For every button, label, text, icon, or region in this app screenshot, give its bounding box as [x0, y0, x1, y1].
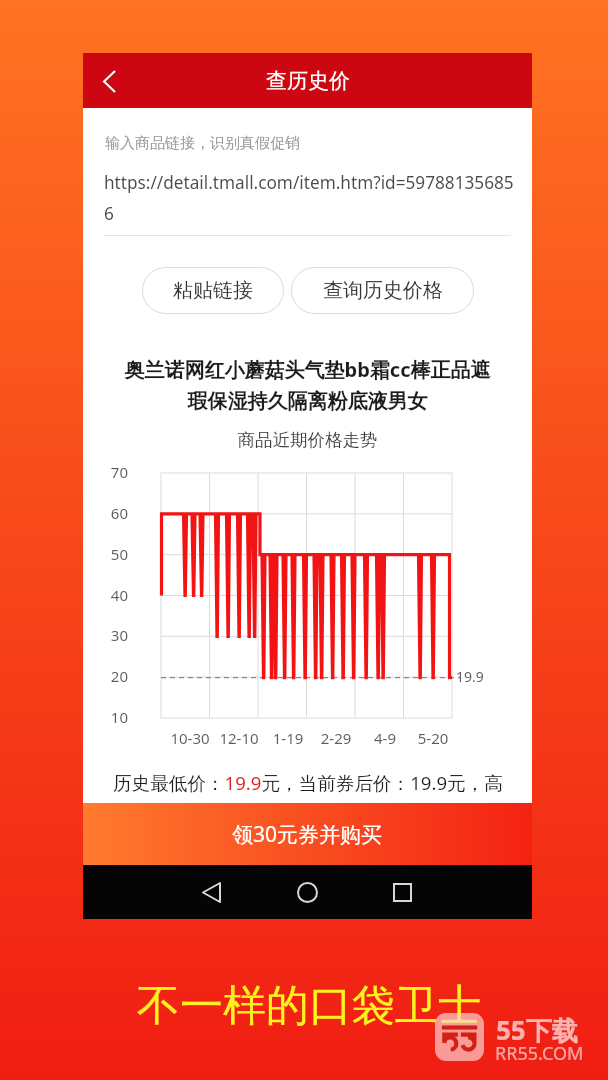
button[interactable]: Back	[189, 870, 233, 914]
staticText: 40	[104, 585, 128, 605]
staticText: 5-20	[405, 728, 461, 748]
staticText: 奥兰诺网红小蘑菇头气垫bb霜cc棒正品遮 瑕保湿持久隔离粉底液男女	[91, 356, 524, 414]
staticText: 2-29	[308, 728, 364, 748]
staticText: 输入商品链接，识别真假促销	[105, 134, 300, 153]
button[interactable]: Back	[83, 55, 135, 107]
staticText: 10-30	[162, 728, 218, 748]
staticText: 查历史价	[266, 68, 350, 94]
staticText: 4-9	[357, 728, 413, 748]
staticText: 70	[104, 462, 128, 482]
button[interactable]: 领30元券并购买	[83, 803, 532, 865]
button[interactable]: 粘贴链接	[143, 268, 283, 313]
staticText: 不一样的口袋卫士	[137, 979, 481, 1033]
staticText: 1-19	[260, 728, 316, 748]
button[interactable]: 查询历史价格	[292, 268, 473, 313]
staticText: 30	[104, 625, 128, 645]
staticText: 查询历史价格	[323, 278, 443, 303]
staticText: 60	[104, 503, 128, 523]
staticText: 19.9	[456, 667, 484, 686]
staticText: 粘贴链接	[173, 278, 253, 303]
staticText: 历史最低价：19.9元，当前券后价：19.9元，高	[113, 770, 503, 795]
staticText: 12-10	[211, 728, 267, 748]
button[interactable]: Home	[285, 870, 329, 914]
staticText: RR55.COM	[495, 1041, 584, 1066]
staticText: https://detail.tmall.com/item.htm?id=597…	[104, 171, 530, 225]
staticText: 20	[104, 666, 128, 686]
staticText: 商品近期价格走势	[83, 429, 532, 451]
staticText: 10	[104, 707, 128, 727]
button[interactable]: Recents	[380, 870, 424, 914]
staticText: 55下载	[496, 1012, 578, 1048]
staticText: 领30元券并购买	[232, 820, 383, 849]
staticText: 50	[104, 544, 128, 564]
